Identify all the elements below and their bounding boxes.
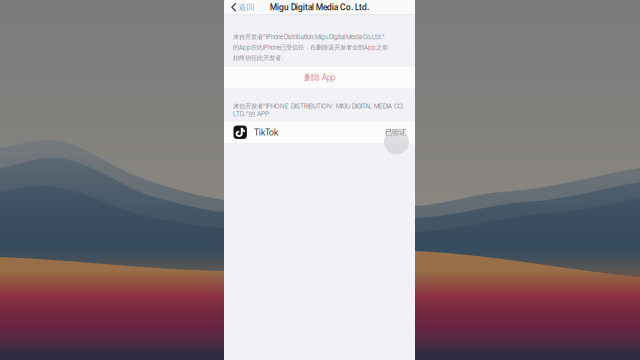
staticText: 返回 [239,2,255,12]
button[interactable]: TikTok [224,121,415,143]
staticText: 删除 App [304,72,335,83]
staticText: 已验证 [385,127,406,137]
staticText: 始终信任此开发者。 [233,54,287,62]
staticText: 的App在此iPhone已受信任，在删除该开发者全部App之前 [233,43,388,51]
staticText: 来自开发者“IPHONE DISTRIBUTION: MIGU DIGITAL … [233,102,404,118]
button[interactable]: 删除 App [224,67,415,88]
staticText: TikTok [254,127,278,137]
button[interactable]: 返回 [224,0,259,14]
staticText: Migu Digital Media Co. Ltd. [270,2,369,12]
staticText: 来自开发者“iPhone Distribution: Migu Digital … [233,33,385,41]
